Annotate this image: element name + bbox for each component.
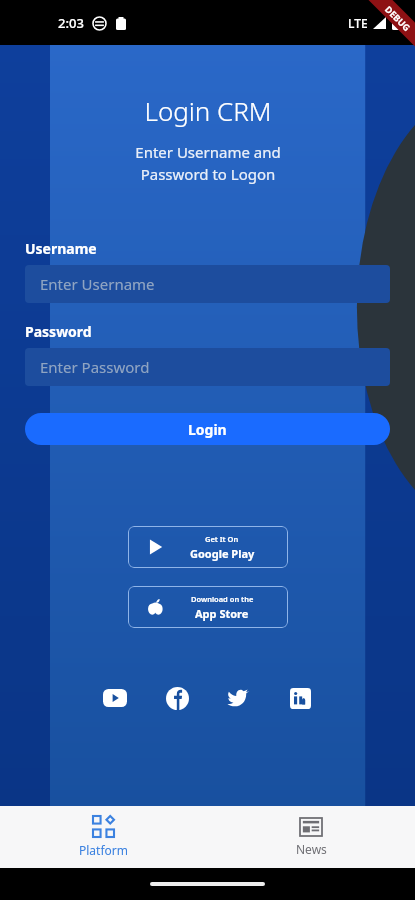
staticText: Google Play <box>190 546 255 561</box>
button[interactable]: Get It On <box>128 526 288 568</box>
staticText: Enter Username and Password to Logon <box>135 142 281 185</box>
staticText: Login <box>188 420 227 439</box>
staticText: Enter Password <box>40 357 150 377</box>
staticText: Enter Username <box>40 274 155 294</box>
button[interactable]: Enter Username <box>25 265 390 303</box>
button[interactable]: Twitter <box>223 683 253 713</box>
staticText: Password <box>25 322 92 341</box>
button[interactable]: Platform <box>0 806 207 868</box>
button[interactable]: YouTube <box>100 683 130 713</box>
staticText: Username <box>25 239 97 258</box>
button[interactable]: Facebook <box>162 683 192 713</box>
staticText: Download on the <box>191 594 254 604</box>
button[interactable]: Login <box>25 413 390 445</box>
button[interactable]: LinkedIn <box>285 683 315 713</box>
button[interactable]: Enter Password <box>25 348 390 386</box>
staticText: Login CRM <box>144 93 272 128</box>
staticText: DEBUG <box>383 3 413 33</box>
staticText: LTE <box>348 15 368 31</box>
staticText: 2:03 <box>58 14 84 32</box>
staticText: News <box>296 841 327 857</box>
staticText: App Store <box>195 606 249 621</box>
staticText: Platform <box>79 842 128 858</box>
staticText: Get It On <box>205 534 239 544</box>
button[interactable]: News <box>207 806 415 868</box>
button[interactable]: Download on the <box>128 586 288 628</box>
